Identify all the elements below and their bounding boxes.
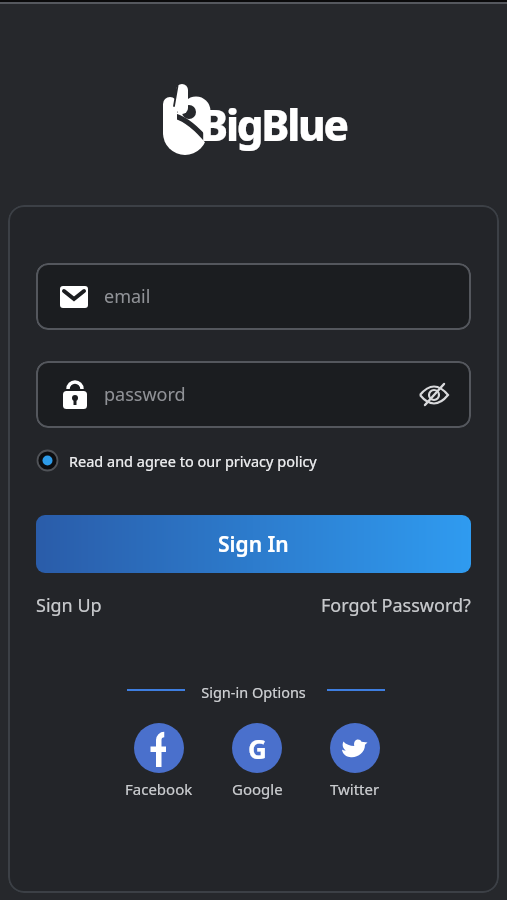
staticText: Sign-in Options [0, 682, 507, 702]
staticText: password [104, 382, 186, 407]
staticText: Sign Up [36, 593, 102, 618]
staticText: G [248, 731, 267, 766]
staticText: Twitter [330, 779, 380, 799]
staticText: BigBlue [200, 96, 347, 153]
button[interactable]: email [36, 263, 471, 330]
button[interactable]: Sign Up [36, 593, 102, 618]
button[interactable]: G [212, 723, 302, 799]
button[interactable]: Facebook [114, 723, 204, 799]
staticText: Facebook [125, 779, 193, 799]
staticText: Forgot Password? [321, 593, 471, 618]
button[interactable]: Read and agree to our privacy policy [36, 449, 317, 472]
staticText: Read and agree to our privacy policy [69, 451, 317, 471]
button[interactable]: Forgot Password? [321, 593, 471, 618]
staticText: email [104, 284, 151, 309]
button[interactable]: Twitter [310, 723, 400, 799]
button[interactable]: Sign In [36, 515, 471, 573]
staticText: Google [232, 779, 283, 799]
staticText: Sign In [218, 530, 289, 559]
button[interactable]: password [36, 361, 471, 428]
